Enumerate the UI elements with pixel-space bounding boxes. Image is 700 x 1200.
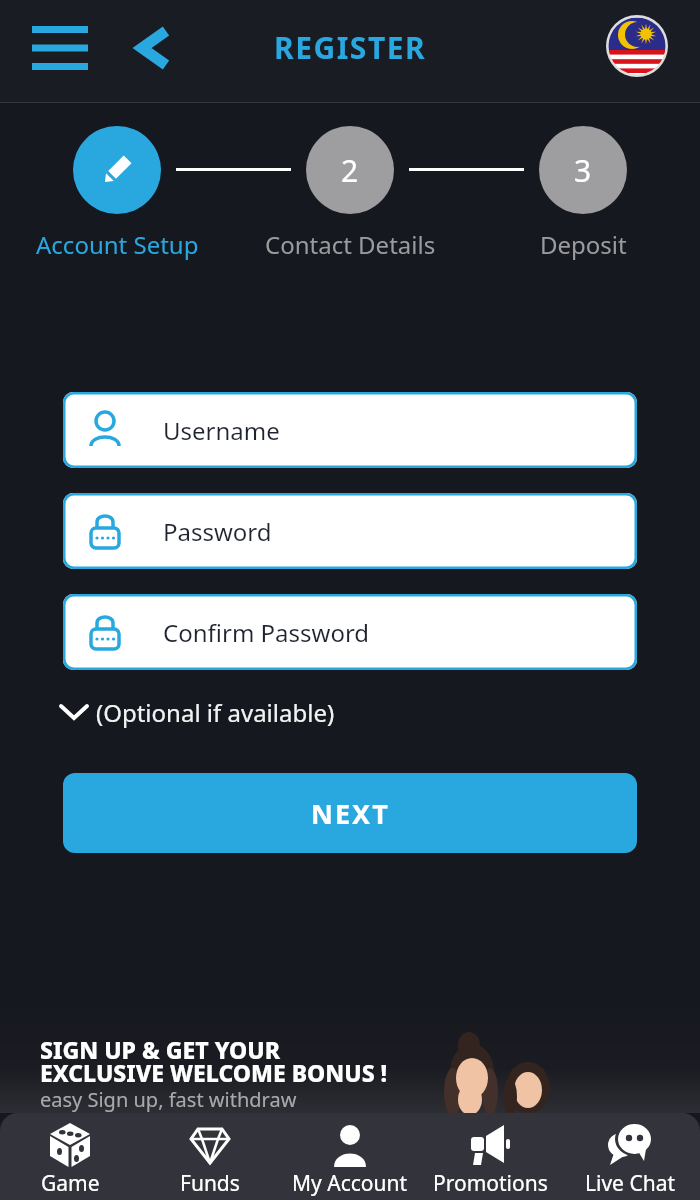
staticText: Live Chat (585, 1169, 676, 1198)
staticText: Promotions (433, 1169, 548, 1198)
staticText: EXCLUSIVE WELCOME BONUS ! (40, 1057, 388, 1088)
staticText: Game (41, 1169, 100, 1198)
button[interactable]: (Optional if available) (60, 692, 335, 732)
button[interactable] (606, 15, 668, 77)
button[interactable]: Funds (140, 1113, 280, 1200)
button[interactable]: Game (0, 1113, 140, 1200)
staticText: Deposit (540, 228, 627, 261)
button[interactable] (25, 18, 95, 78)
button[interactable] (73, 126, 161, 214)
staticText: easy Sign up, fast withdraw (40, 1086, 297, 1113)
button[interactable] (120, 15, 186, 81)
staticText: 3 (574, 150, 592, 191)
staticText: (Optional if available) (96, 696, 335, 729)
staticText: My Account (292, 1169, 408, 1198)
button[interactable]: Promotions (420, 1113, 560, 1200)
button[interactable]: Username (63, 392, 637, 468)
staticText: Password (163, 515, 272, 548)
button[interactable]: 2 (306, 126, 394, 214)
button[interactable]: Confirm Password (63, 594, 637, 670)
button[interactable]: 3 (539, 126, 627, 214)
staticText: Confirm Password (163, 616, 370, 649)
button[interactable]: Live Chat (560, 1113, 700, 1200)
staticText: 2 (341, 150, 359, 191)
staticText: NEXT (311, 795, 390, 832)
button[interactable]: Password (63, 493, 637, 569)
button[interactable]: NEXT (63, 773, 637, 853)
staticText: Funds (180, 1169, 240, 1198)
staticText: SIGN UP & GET YOUR (40, 1034, 280, 1065)
staticText: Contact Details (265, 228, 436, 261)
button[interactable]: My Account (280, 1113, 420, 1200)
staticText: Account Setup (36, 228, 199, 261)
staticText: REGISTER (274, 27, 427, 68)
staticText: Username (163, 414, 280, 447)
